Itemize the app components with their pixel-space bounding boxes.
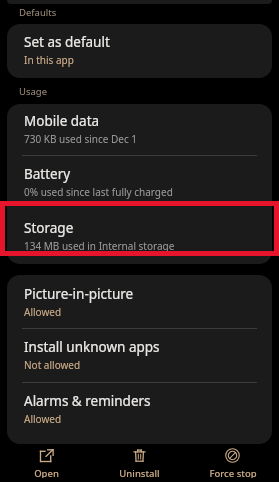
staticText: Uninstall (119, 467, 160, 478)
staticText: Storage (24, 219, 74, 237)
staticText: Set as default (24, 33, 110, 51)
staticText: Allowed (24, 412, 62, 426)
button[interactable]: Uninstall (93, 444, 186, 482)
staticText: 134 MB used in Internal storage (24, 239, 175, 253)
staticText: Mobile data (24, 112, 100, 130)
staticText: 0% used since last fully charged (24, 185, 173, 199)
staticText: Open (34, 467, 59, 478)
button[interactable]: Battery (7, 156, 272, 210)
button[interactable]: Picture-in-picture (7, 275, 272, 328)
staticText: Force stop (209, 467, 257, 478)
staticText: Usage (19, 85, 48, 98)
staticText: Battery (24, 165, 71, 183)
button[interactable]: Mobile data (7, 104, 272, 155)
staticText: Allowed (24, 305, 62, 319)
staticText: Defaults (19, 6, 57, 19)
staticText: Install unknown apps (24, 338, 160, 356)
staticText: In this app (24, 53, 74, 67)
button[interactable]: Install unknown apps (7, 329, 272, 382)
staticText: 730 KB used since Dec 1 (24, 132, 138, 146)
button[interactable]: Alarms & reminders (7, 383, 272, 436)
button[interactable]: Set as default (7, 24, 272, 78)
button[interactable]: Storage (7, 210, 272, 264)
staticText: Picture-in-picture (24, 285, 134, 303)
staticText: Alarms & reminders (24, 392, 151, 410)
staticText: Not allowed (24, 358, 81, 372)
button[interactable]: Force stop (186, 444, 279, 482)
button[interactable]: Open (0, 444, 93, 482)
